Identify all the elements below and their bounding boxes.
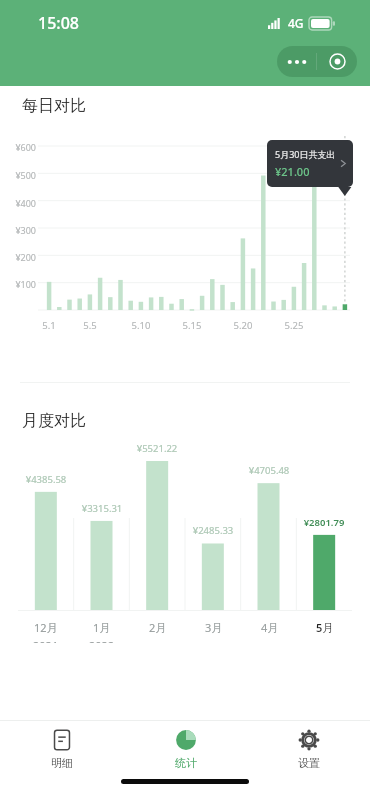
button[interactable]: 3月 — [186, 620, 242, 635]
staticText: 5.25 — [280, 319, 308, 332]
button[interactable]: 设置 — [247, 721, 370, 779]
staticText: ¥600 — [0, 141, 36, 153]
button[interactable]: 12月 — [18, 620, 74, 643]
staticText: ¥100 — [0, 278, 36, 290]
staticText: 统计 — [175, 756, 197, 770]
button[interactable]: Mini program menu — [277, 46, 357, 77]
staticText: 12月 — [34, 620, 58, 635]
staticText: ¥400 — [0, 197, 36, 209]
staticText: ¥3315.31 — [74, 502, 130, 515]
staticText: 2022 — [89, 638, 115, 643]
staticText: ¥2485.33 — [185, 524, 241, 537]
staticText: 2021 — [33, 638, 59, 643]
staticText: ¥2801.79 — [296, 516, 352, 529]
staticText: ¥4385.58 — [18, 473, 74, 486]
staticText: ¥300 — [0, 224, 36, 236]
button[interactable]: 5月 — [298, 620, 352, 635]
staticText: 明细 — [51, 756, 73, 770]
staticText: ¥5521.22 — [129, 442, 185, 455]
staticText: 2月 — [149, 620, 167, 635]
staticText: 月度对比 — [22, 411, 86, 431]
staticText: 4月 — [261, 620, 279, 635]
staticText: 5.1 — [35, 319, 63, 332]
button[interactable]: 明细 — [0, 721, 124, 779]
staticText: 1月 — [93, 620, 111, 635]
staticText: 5.15 — [178, 319, 206, 332]
staticText: ¥200 — [0, 251, 36, 263]
staticText: 4G — [288, 15, 304, 31]
staticText: 每日对比 — [22, 96, 86, 116]
button[interactable]: 1月 — [74, 620, 130, 643]
staticText: 15:08 — [38, 12, 79, 34]
staticText: ¥4705.48 — [241, 464, 297, 477]
staticText: ¥500 — [0, 169, 36, 181]
staticText: 设置 — [298, 756, 320, 770]
button[interactable]: 5月30日共支出 — [267, 140, 353, 187]
staticText: 5.10 — [127, 319, 155, 332]
button[interactable]: 统计 — [124, 721, 247, 779]
staticText: 5月 — [316, 620, 334, 635]
staticText: 5.5 — [76, 319, 104, 332]
staticText: 5月30日共支出 — [275, 148, 336, 160]
button[interactable]: 4月 — [242, 620, 298, 635]
staticText: ¥21.00 — [275, 164, 310, 179]
staticText: 3月 — [205, 620, 223, 635]
button[interactable]: 2月 — [130, 620, 186, 635]
staticText: 5.20 — [229, 319, 257, 332]
